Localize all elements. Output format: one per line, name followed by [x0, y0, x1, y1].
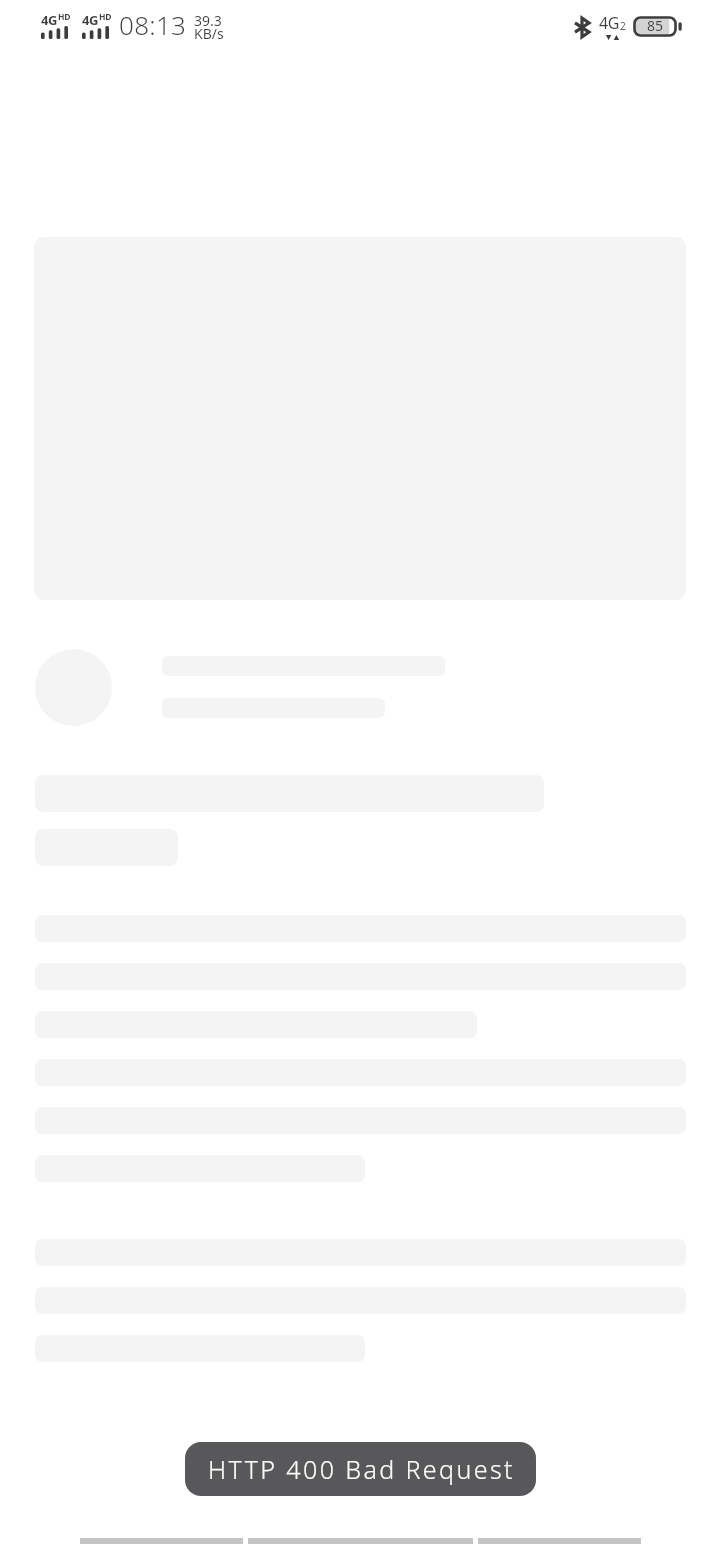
- staticText: HTTP 400 Bad Request: [208, 1452, 515, 1486]
- staticText: 85: [647, 16, 664, 35]
- staticText: 2: [620, 19, 626, 33]
- staticText: 4G: [599, 12, 620, 34]
- staticText: 4G: [41, 11, 58, 29]
- staticText: KB/s: [194, 24, 224, 43]
- staticText: 08:13: [119, 7, 187, 42]
- staticText: HD: [58, 11, 71, 23]
- staticText: 4G: [82, 11, 99, 29]
- staticText: 39.3: [194, 11, 222, 30]
- button[interactable]: Author placeholder: [0, 649, 720, 726]
- button[interactable]: HTTP 400 Bad Request: [185, 1442, 536, 1496]
- staticText: HD: [99, 11, 112, 23]
